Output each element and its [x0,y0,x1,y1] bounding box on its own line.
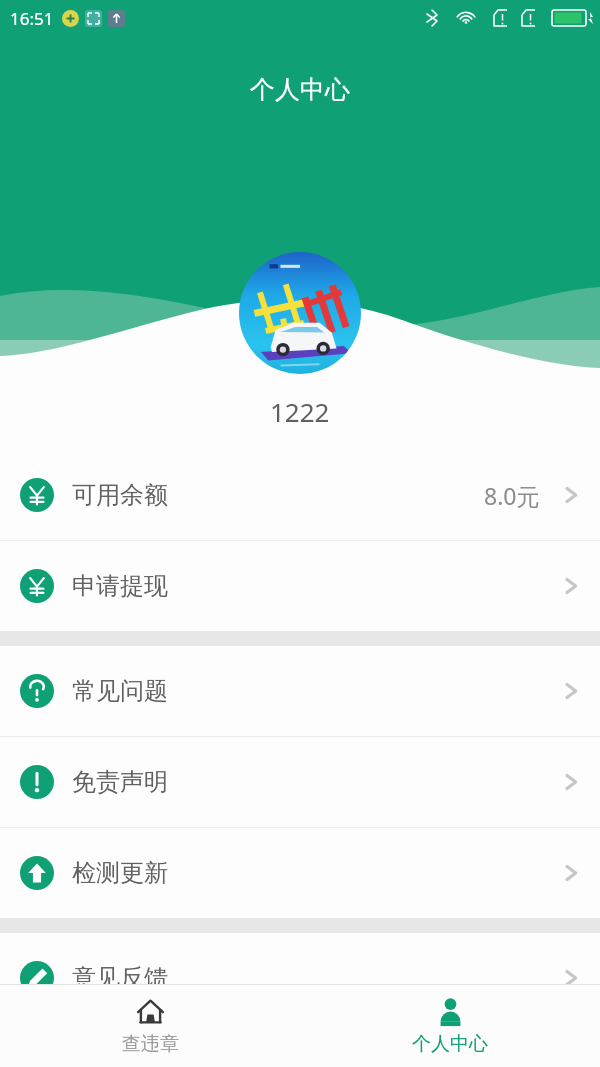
button[interactable]: 免责声明 [0,737,600,827]
staticText: 个人中心 [412,1032,488,1056]
staticText: 可用余额 [72,480,168,510]
staticText: 常见问题 [72,676,168,706]
button[interactable]: 申请提现 [0,541,600,631]
button[interactable]: 个人中心 [300,985,600,1067]
staticText: 申请提现 [72,571,168,601]
staticText: 免责声明 [72,767,168,797]
button[interactable]: 检测更新 [0,828,600,918]
staticText: 个人中心 [0,74,600,105]
button[interactable]: 意见反馈 [0,933,600,1023]
other: 个人中心 [435,996,466,1027]
staticText: 8.0元 [484,480,540,511]
staticText: 16:51 [10,7,54,30]
staticText: 检测更新 [72,858,168,888]
staticText: 查违章 [122,1032,179,1056]
button[interactable]: 查违章 [0,985,300,1067]
staticText: 1222 [270,394,330,429]
other: 查违章 [135,996,166,1027]
button[interactable]: 可用余额 [0,450,600,540]
button[interactable]: 常见问题 [0,646,600,736]
staticText: 意见反馈 [72,963,168,993]
